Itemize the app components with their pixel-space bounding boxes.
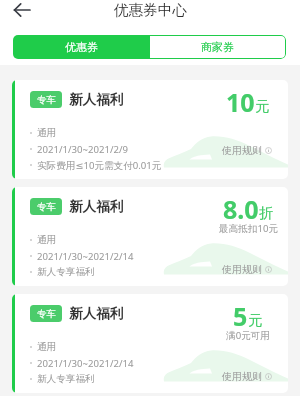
staticText: 元 <box>248 311 263 329</box>
staticText: 新人福利 <box>69 305 123 322</box>
staticText: 满0元可用 <box>226 329 270 341</box>
button[interactable]: Back <box>6 0 38 26</box>
staticText: 10 <box>226 85 255 119</box>
staticText: 新人福利 <box>69 198 123 215</box>
staticText: 新人专享福利 <box>37 266 95 278</box>
button[interactable]: 商家券 <box>149 35 286 59</box>
staticText: 专车 <box>37 94 56 106</box>
staticText: 优惠券中心 <box>114 1 187 19</box>
staticText: 使用规则 <box>222 263 262 276</box>
staticText: 专车 <box>37 308 56 320</box>
button[interactable]: 使用规则 <box>222 263 272 276</box>
staticText: 商家券 <box>201 40 234 54</box>
staticText: 通用 <box>37 234 57 246</box>
button[interactable]: 专车 <box>12 294 288 393</box>
staticText: 专车 <box>37 201 56 213</box>
staticText: 5 <box>233 299 248 333</box>
staticText: 2021/1/30~2021/2/14 <box>37 357 134 370</box>
staticText: 2021/1/30~2021/2/9 <box>37 143 129 156</box>
button[interactable]: 专车 <box>12 80 288 179</box>
staticText: 通用 <box>37 341 57 353</box>
staticText: 通用 <box>37 127 57 139</box>
staticText: 新人专享福利 <box>37 373 95 385</box>
staticText: 新人福利 <box>69 91 123 108</box>
button[interactable]: 专车 <box>12 187 288 286</box>
staticText: 最高抵扣10元 <box>219 222 278 234</box>
staticText: 元 <box>255 97 270 115</box>
button[interactable]: 使用规则 <box>222 144 272 157</box>
staticText: 实际费用≤10元需支付0.01元 <box>37 159 162 172</box>
staticText: 折 <box>259 204 274 222</box>
staticText: 8.0 <box>223 192 259 226</box>
staticText: 优惠券 <box>65 40 98 54</box>
button[interactable]: 优惠券 <box>13 35 149 59</box>
staticText: 使用规则 <box>222 370 262 383</box>
staticText: 2021/1/30~2021/2/14 <box>37 250 134 263</box>
staticText: 使用规则 <box>222 144 262 157</box>
button[interactable]: 使用规则 <box>222 370 272 383</box>
